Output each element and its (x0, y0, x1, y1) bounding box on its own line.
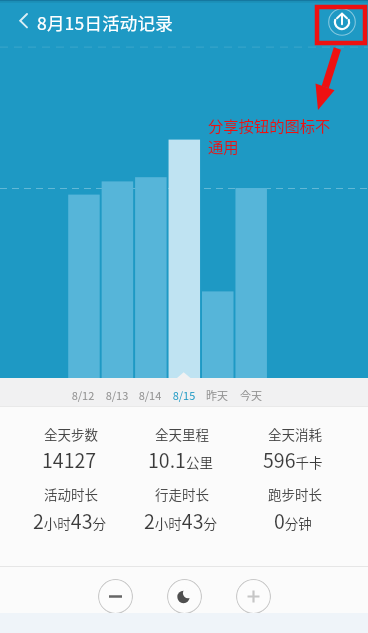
staticText: 14127 (42, 445, 97, 473)
staticText: 分享按钮的图标不 通用 (208, 114, 331, 158)
button[interactable]: 8/12 (67, 387, 99, 403)
button[interactable]: 8/15 (168, 387, 200, 403)
staticText: 跑步时长 (268, 484, 322, 504)
staticText: 2小时43分 (144, 506, 217, 534)
button[interactable]: 行走时长 (122, 484, 242, 534)
staticText: 全天步数 (44, 424, 98, 444)
button[interactable] (167, 579, 202, 614)
staticText: 全天消耗 (268, 424, 322, 444)
button[interactable]: 全天消耗 (235, 424, 355, 473)
button[interactable]: 跑步时长 (235, 484, 355, 534)
button[interactable]: 8/14 (134, 387, 166, 403)
staticText: 行走时长 (155, 484, 209, 504)
button[interactable]: 8/13 (101, 387, 133, 403)
button[interactable]: 活动时长 (11, 484, 131, 534)
staticText: 2小时43分 (33, 506, 106, 534)
button[interactable] (325, 4, 359, 38)
staticText: 活动时长 (44, 484, 98, 504)
button[interactable] (0, 0, 38, 42)
staticText: 596千卡 (263, 445, 323, 473)
button[interactable]: 全天里程 (122, 424, 242, 473)
button[interactable] (236, 579, 271, 614)
button[interactable]: 全天步数 (11, 424, 131, 473)
button[interactable]: 昨天 (201, 387, 233, 403)
staticText: 全天里程 (155, 424, 209, 444)
staticText: 8月15日活动记录 (37, 10, 173, 35)
staticText: 10.1公里 (148, 445, 213, 473)
button[interactable]: 今天 (235, 387, 267, 403)
staticText: 0分钟 (274, 506, 312, 534)
button[interactable] (98, 579, 133, 614)
